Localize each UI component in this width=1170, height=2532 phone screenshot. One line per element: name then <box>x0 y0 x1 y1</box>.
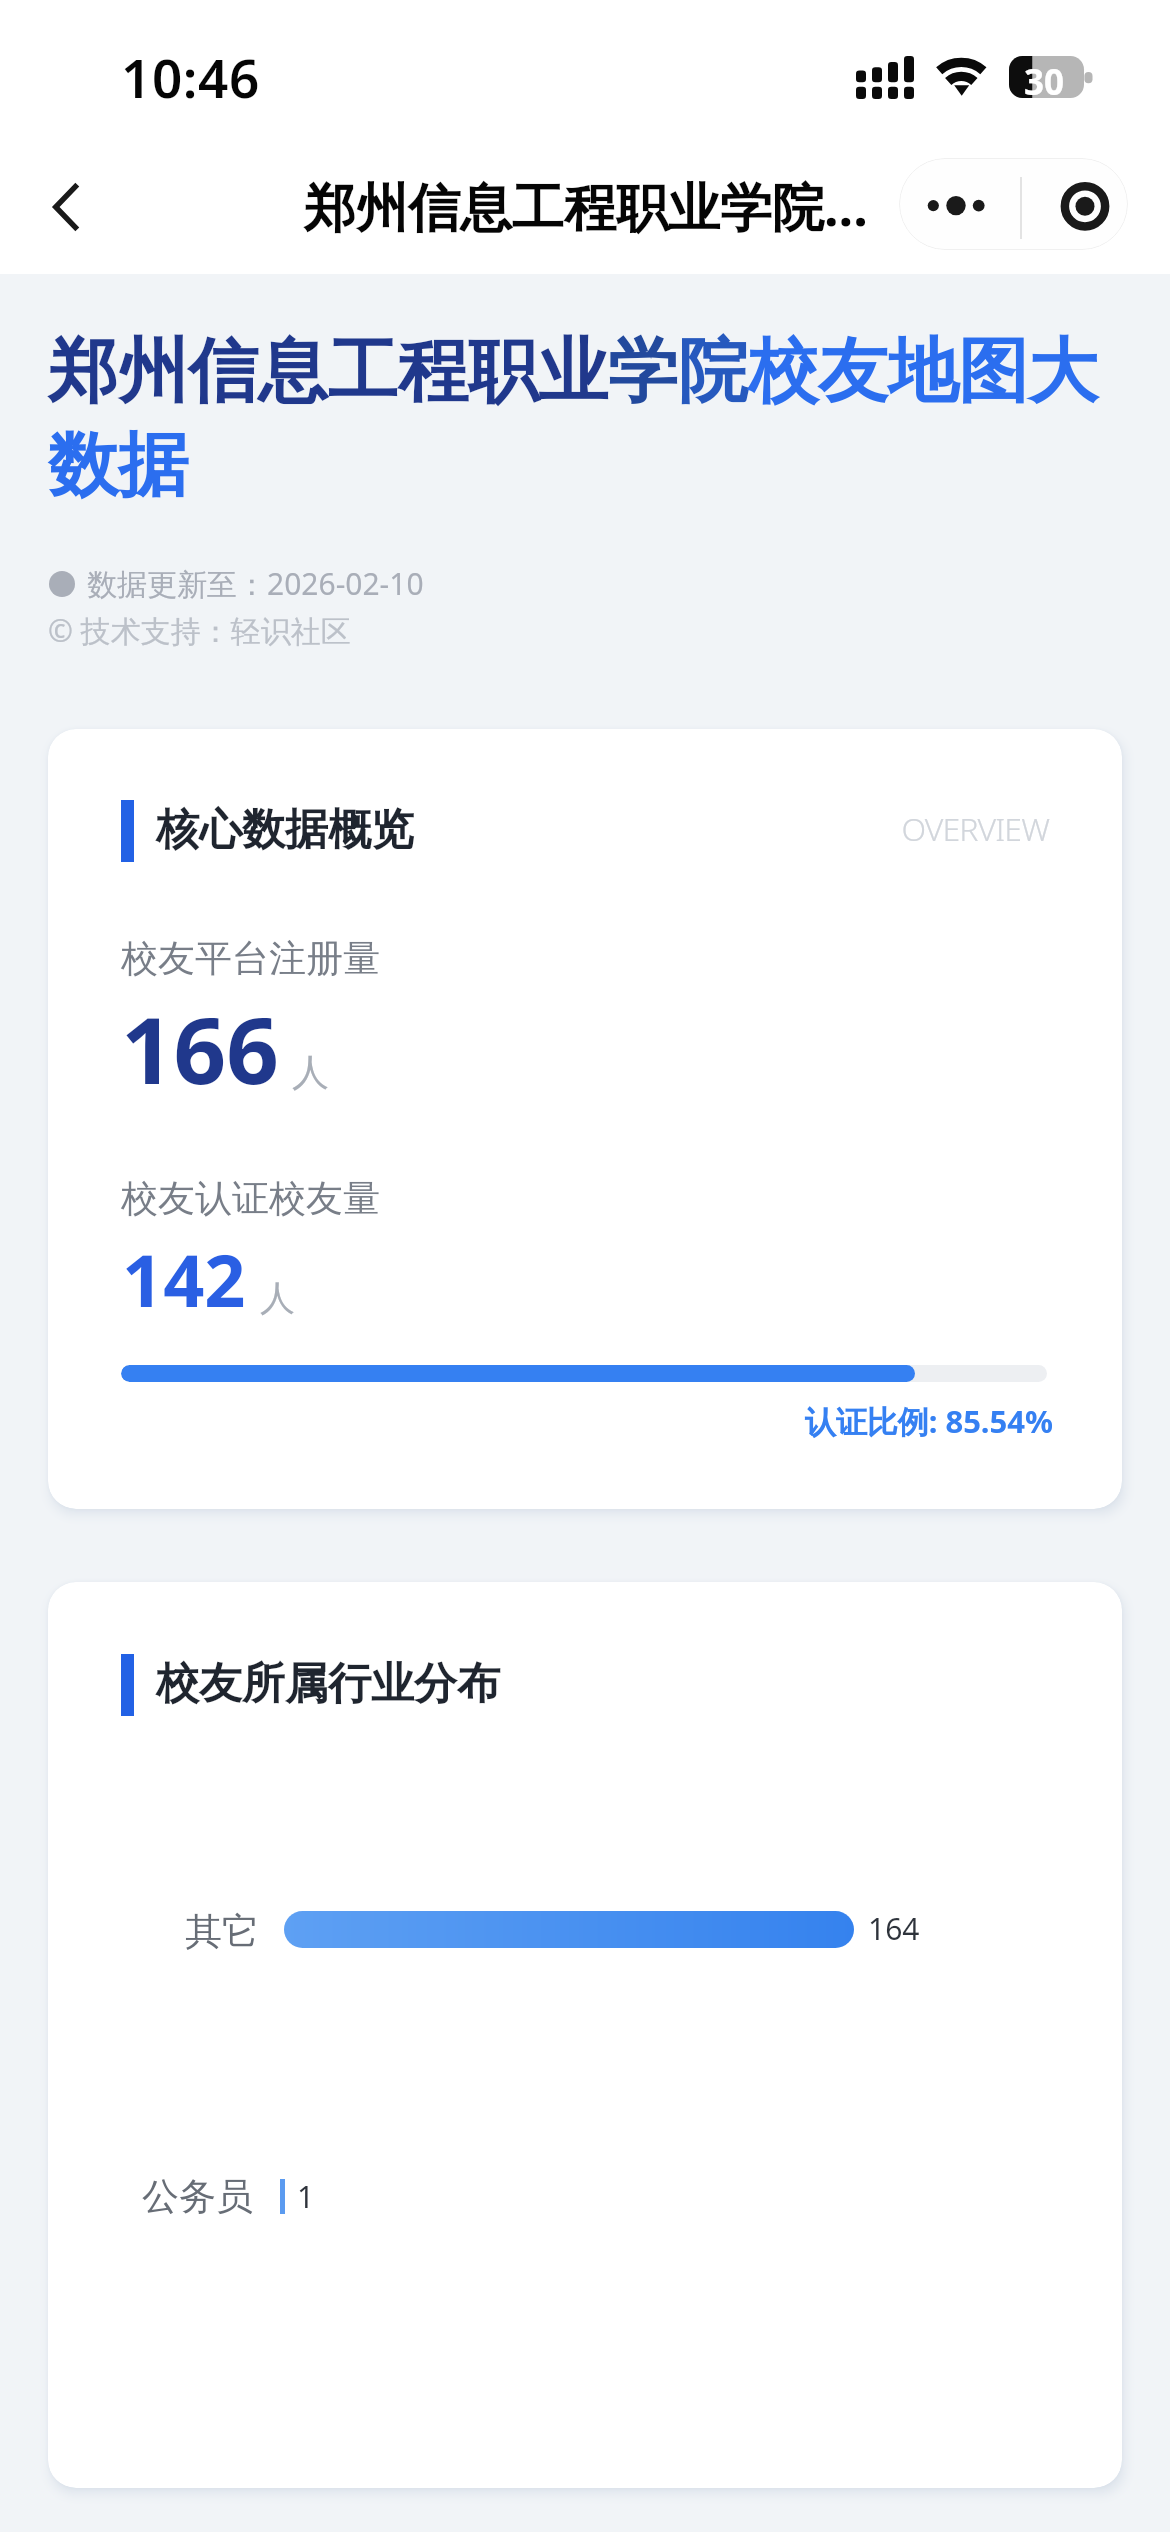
button[interactable]: 校友所属行业分布 <box>48 1582 1122 2488</box>
staticText: 166 <box>121 986 279 1111</box>
staticText: 公务员 <box>53 2173 253 2220</box>
button[interactable]: Back <box>13 152 119 262</box>
staticText: © 技术支持：轻识社区 <box>48 610 351 651</box>
staticText: OVERVIEW <box>668 807 1049 851</box>
staticText: 其它 <box>59 1908 259 1955</box>
staticText: 认证比例: 85.54% <box>547 1400 1053 1442</box>
staticText: 30 <box>1024 58 1065 100</box>
button[interactable]: Close mini program <box>1022 158 1128 250</box>
staticText: 人 <box>260 1276 295 1320</box>
staticText: 郑州信息工程职业学院... <box>304 170 868 241</box>
button[interactable]: 核心数据概览 <box>48 729 1122 1509</box>
staticText: 10:46 <box>121 41 260 113</box>
staticText: 校友平台注册量 <box>121 935 380 982</box>
staticText: 核心数据概览 <box>156 803 414 857</box>
button[interactable]: More options <box>899 158 1020 250</box>
staticText: 1 <box>297 2176 315 2217</box>
button[interactable]: 其它 <box>48 1872 1122 1987</box>
staticText: 142 <box>122 1230 246 1328</box>
staticText: 郑州信息工程职业学院校友地图大数据 <box>48 328 1123 510</box>
staticText: 人 <box>292 1049 329 1096</box>
staticText: 数据更新至：2026-02-10 <box>87 563 424 604</box>
staticText: 校友所属行业分布 <box>156 1657 500 1711</box>
staticText: 164 <box>868 1908 920 1949</box>
button[interactable]: 公务员 <box>48 2137 1122 2252</box>
staticText: 校友认证校友量 <box>121 1175 380 1222</box>
